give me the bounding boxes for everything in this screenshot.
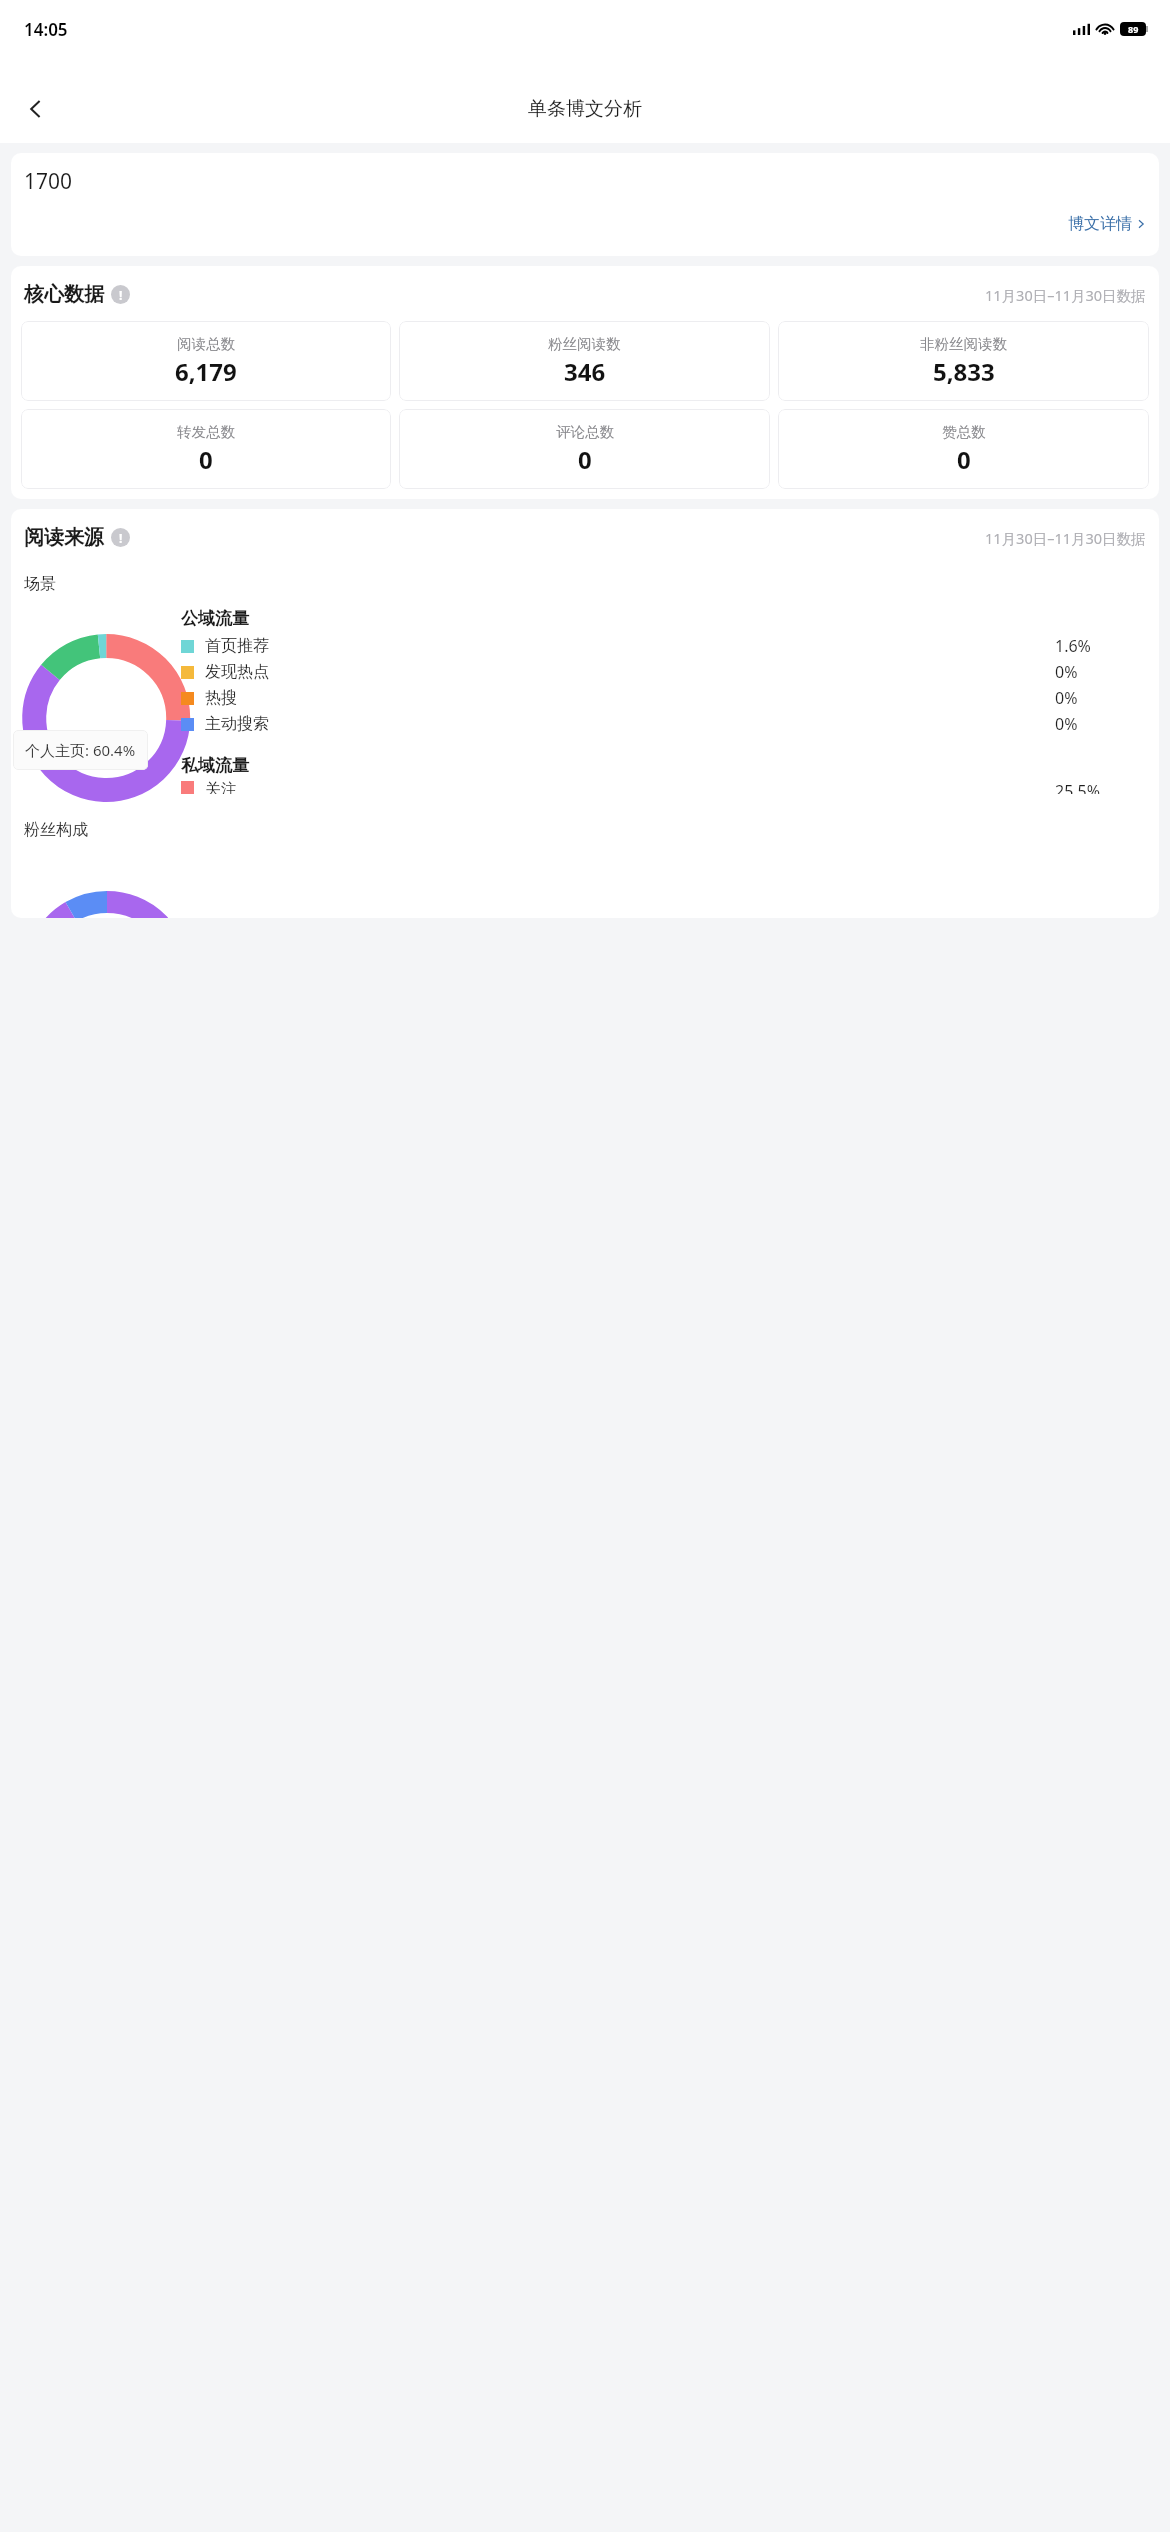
staticText: 私域流量: [181, 755, 249, 776]
staticText: !: [119, 530, 123, 546]
button[interactable]: 赞总数: [778, 409, 1149, 489]
staticText: 0: [199, 443, 213, 476]
button[interactable]: 1700: [11, 153, 1159, 256]
staticText: 单条博文分析: [528, 97, 642, 121]
staticText: 1.6%: [1055, 635, 1091, 657]
staticText: 阅读总数: [177, 335, 235, 353]
staticText: 转发总数: [177, 423, 235, 441]
staticText: 0: [578, 443, 592, 476]
staticText: 11月30日–11月30日数据: [985, 285, 1146, 305]
button[interactable]: 热搜: [181, 685, 1141, 711]
staticText: 发现热点: [205, 662, 269, 682]
staticText: 主动搜索: [205, 714, 269, 734]
button[interactable]: Back: [14, 87, 58, 131]
staticText: 公域流量: [181, 608, 249, 629]
staticText: 25.5%: [1055, 780, 1101, 794]
button[interactable]: 非粉丝阅读数: [778, 321, 1149, 401]
staticText: 博文详情: [1068, 214, 1132, 234]
button[interactable]: 首页推荐: [181, 633, 1141, 659]
staticText: 赞总数: [942, 423, 986, 441]
button[interactable]: 阅读总数: [21, 321, 391, 401]
staticText: 首页推荐: [205, 636, 269, 656]
staticText: 5,833: [933, 355, 995, 388]
staticText: 场景: [24, 574, 56, 594]
staticText: 阅读来源: [24, 525, 104, 550]
staticText: 0%: [1055, 687, 1078, 709]
button[interactable]: 关注: [181, 780, 1141, 794]
staticText: !: [119, 287, 123, 303]
staticText: 评论总数: [556, 423, 614, 441]
staticText: 1700: [24, 167, 73, 196]
staticText: 0%: [1055, 661, 1078, 683]
staticText: 6,179: [175, 355, 237, 388]
staticText: 0: [957, 443, 971, 476]
button[interactable]: 粉丝阅读数: [399, 321, 770, 401]
button[interactable]: 评论总数: [399, 409, 770, 489]
staticText: 粉丝阅读数: [548, 335, 621, 353]
button[interactable]: 主动搜索: [181, 711, 1141, 737]
button[interactable]: Info: [111, 528, 130, 547]
button[interactable]: 发现热点: [181, 659, 1141, 685]
staticText: 核心数据: [24, 282, 104, 307]
staticText: 14:05: [24, 18, 68, 41]
staticText: 关注: [205, 780, 237, 794]
staticText: 粉丝构成: [24, 820, 88, 840]
button[interactable]: Info: [111, 285, 130, 304]
staticText: 0%: [1055, 713, 1078, 735]
staticText: 89: [1128, 23, 1139, 35]
staticText: 11月30日–11月30日数据: [985, 528, 1146, 548]
staticText: 个人主页: 60.4%: [25, 740, 136, 760]
staticText: 346: [564, 355, 606, 388]
staticText: 非粉丝阅读数: [920, 335, 1007, 353]
button[interactable]: 转发总数: [21, 409, 391, 489]
staticText: 热搜: [205, 688, 237, 708]
